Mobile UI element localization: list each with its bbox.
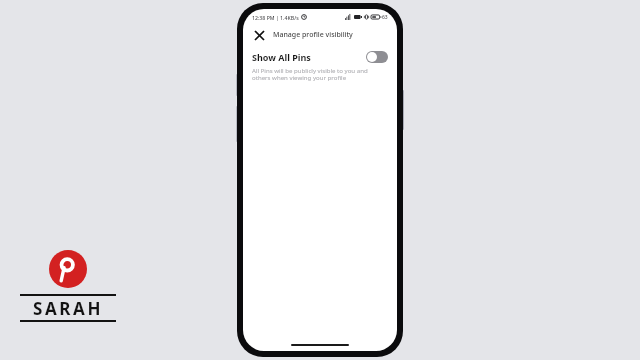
staticText: Manage profile visibility (273, 30, 353, 40)
staticText: All Pins will be publicly visible to you… (252, 66, 369, 82)
button[interactable]: Show All Pins (243, 51, 397, 82)
staticText: Show All Pins (252, 51, 311, 63)
button[interactable]: Close (251, 27, 267, 43)
staticText: SARAH (33, 297, 104, 320)
staticText: 63 (382, 14, 388, 21)
staticText: 12:38 PM | 1.4KB/s (252, 14, 299, 21)
button[interactable]: Show All Pins toggle (366, 51, 388, 63)
